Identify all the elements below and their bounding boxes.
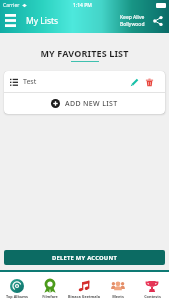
- staticText: Binaca Geetmala: [68, 294, 100, 299]
- staticText: 1:14 PM: [73, 2, 92, 9]
- button[interactable]: ADD NEW LIST: [4, 93, 165, 114]
- button[interactable]: Share: [150, 13, 165, 28]
- staticText: Top Albums: [6, 294, 28, 299]
- button[interactable]: Edit: [127, 75, 141, 89]
- staticText: DELETE MY ACCOUNT: [52, 254, 118, 262]
- staticText: Carrier: [3, 2, 20, 9]
- button[interactable]: DELETE MY ACCOUNT: [4, 250, 165, 265]
- button[interactable]: Filmfare: [33, 274, 67, 299]
- staticText: My Lists: [26, 15, 59, 27]
- staticText: Filmfare: [42, 294, 58, 299]
- button[interactable]: Contests: [135, 274, 169, 299]
- staticText: Meets: [112, 294, 124, 299]
- button[interactable]: Delete: [142, 75, 156, 89]
- staticText: Test: [23, 77, 37, 87]
- button[interactable]: Binaca Geetmala: [67, 274, 101, 299]
- staticText: Keep Alive: [120, 14, 145, 21]
- button[interactable]: Menu: [0, 10, 21, 31]
- button[interactable]: Top Albums: [0, 274, 33, 299]
- staticText: MY FAVORITES LIST: [40, 47, 129, 59]
- staticText: Bollywood: [120, 21, 145, 28]
- staticText: Contests: [144, 294, 161, 299]
- button[interactable]: Meets: [101, 274, 135, 299]
- button[interactable]: Test: [4, 71, 165, 92]
- staticText: ADD NEW LIST: [65, 99, 118, 109]
